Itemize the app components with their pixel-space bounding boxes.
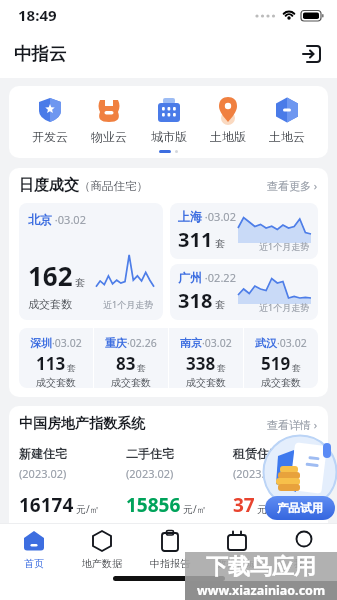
staticText: 首页 [24, 557, 44, 570]
staticText: 套 [215, 298, 225, 311]
staticText: 中国房地产指数系统 [19, 415, 145, 433]
staticText: 查看详情 › [267, 417, 318, 432]
staticText: 数据商城 [217, 557, 257, 570]
staticText: ·02.22 [202, 270, 236, 285]
button[interactable]: 广州 [170, 264, 318, 320]
staticText: 套 [67, 362, 76, 373]
staticText: 成交套数 [36, 376, 76, 388]
staticText: 我的 [294, 557, 314, 570]
staticText: 近1个月走势 [103, 298, 154, 310]
button[interactable]: 中国房地产指数系统 [19, 406, 318, 442]
button[interactable]: 土地云 [269, 96, 305, 144]
staticText: 成交套数 [261, 376, 301, 388]
staticText: 武汉 [255, 336, 277, 350]
button[interactable]: 开发云 [32, 96, 68, 144]
staticText: 北京 [28, 212, 52, 227]
staticText: ·03.02 [202, 209, 236, 224]
staticText: ·03.02 [277, 336, 307, 350]
button[interactable]: 二手住宅 [126, 446, 233, 518]
button[interactable] [301, 43, 323, 65]
button[interactable]: 日度成交 [19, 168, 318, 203]
staticText: www.xiazainiao.com [197, 582, 326, 599]
staticText: (2023.02) [233, 466, 281, 481]
button[interactable]: 我的 [270, 529, 337, 570]
staticText: 重庆 [105, 336, 127, 350]
staticText: (2023.02) [19, 466, 67, 481]
staticText: ·03.02 [52, 336, 82, 350]
staticText: 近1个月走势 [259, 301, 310, 313]
button[interactable]: 新建住宅 [19, 446, 126, 518]
staticText: 83 [116, 352, 136, 375]
staticText: 租赁住宅 [233, 446, 281, 461]
button[interactable]: 重庆 [94, 328, 168, 388]
staticText: 元/㎡ [183, 502, 207, 516]
staticText: (2023.02) [126, 466, 174, 481]
button[interactable]: 租赁住宅 [233, 446, 318, 518]
staticText: ·03.02 [52, 212, 86, 227]
button[interactable]: 物业云 [91, 96, 127, 144]
staticText: 成交套数 [28, 297, 72, 311]
staticText: 16174 [19, 492, 74, 518]
staticText: 广州 [178, 270, 202, 285]
staticText: 318 [178, 287, 213, 314]
staticText: 18:49 [18, 5, 57, 25]
staticText: 南京 [180, 336, 202, 350]
staticText: ·03.02 [202, 336, 232, 350]
staticText: 37 [233, 492, 255, 518]
button[interactable]: 首页 [0, 529, 68, 570]
staticText: 深圳 [30, 336, 52, 350]
button[interactable]: 深圳 [19, 328, 93, 388]
staticText: 中指云 [14, 43, 67, 65]
staticText: 套 [292, 362, 301, 373]
button[interactable]: 南京 [169, 328, 243, 388]
staticText: 地产数据 [82, 557, 122, 570]
staticText: 二手住宅 [126, 446, 174, 461]
staticText: 311 [178, 226, 213, 253]
staticText: 15856 [126, 492, 181, 518]
staticText: 查看更多 › [267, 178, 318, 193]
button[interactable]: 土地版 [210, 96, 246, 144]
staticText: 中指报告 [150, 557, 190, 570]
staticText: （商品住宅） [79, 179, 148, 193]
staticText: 元/㎡ [76, 502, 100, 516]
staticText: 开发云 [32, 129, 68, 144]
button[interactable]: 产品试用 [262, 434, 337, 520]
staticText: 套 [215, 237, 225, 250]
staticText: 162 [28, 258, 73, 293]
button[interactable]: 上海 [170, 203, 318, 259]
staticText: 产品试用 [277, 501, 323, 515]
staticText: 土地云 [269, 129, 305, 144]
staticText: 城市版 [151, 129, 187, 144]
button[interactable]: 武汉 [244, 328, 318, 388]
staticText: 物业云 [91, 129, 127, 144]
staticText: 下载鸟应用 [206, 553, 316, 581]
staticText: 套 [217, 362, 226, 373]
staticText: 土地版 [210, 129, 246, 144]
staticText: 519 [261, 352, 291, 375]
staticText: 成交套数 [186, 376, 226, 388]
staticText: 上海 [178, 209, 202, 224]
staticText: 113 [36, 352, 66, 375]
staticText: 成交套数 [111, 376, 151, 388]
staticText: 元/㎡ [257, 502, 281, 516]
staticText: 近1个月走势 [259, 240, 310, 252]
staticText: ·02.26 [127, 336, 157, 350]
button[interactable]: 中指报告 [136, 529, 203, 570]
staticText: 套 [137, 362, 146, 373]
button[interactable]: 北京 [19, 203, 163, 320]
button[interactable]: 数据商城 [203, 529, 270, 570]
staticText: 新建住宅 [19, 446, 67, 461]
button[interactable]: 地产数据 [68, 529, 136, 570]
staticText: 日度成交 [19, 176, 79, 195]
staticText: 338 [186, 352, 216, 375]
staticText: 套 [75, 276, 85, 289]
button[interactable]: 城市版 [151, 96, 187, 144]
